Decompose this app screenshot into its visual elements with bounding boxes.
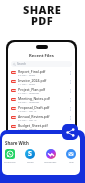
staticText: PDF [31,13,54,28]
staticText: Budget_Sheet.pdf [18,123,48,128]
staticText: Messenger [44,160,57,163]
button[interactable]: Search [11,61,72,67]
staticText: PDF [12,71,16,74]
staticText: 3.7 MB • Yesterday [18,92,40,95]
staticText: 2.0 MB • Mar 12 [18,110,37,113]
staticText: 0.8 MB • Yesterday [18,101,40,104]
button[interactable]: PDF [8,77,75,86]
staticText: Mail [69,160,74,163]
staticText: PDF [12,125,16,128]
staticText: Invoice_2024.pdf [18,78,47,83]
staticText: Skype [27,160,34,163]
button[interactable]: PDF [8,122,75,131]
staticText: Project_Plan.pdf [18,87,46,92]
staticText: Proposal_Draft.pdf [18,105,50,110]
staticText: PDF [12,116,16,119]
staticText: Annual_Review.pdf [18,114,50,119]
staticText: PDF [12,98,16,101]
staticText: S [28,149,32,159]
staticText: PDF [12,80,16,83]
button[interactable]: PDF [8,86,75,95]
staticText: WhatsApp [4,160,16,163]
staticText: 1.1 MB • Today [18,83,36,86]
button[interactable]: PDF [8,104,75,113]
button[interactable]: WhatsApp [4,149,16,163]
staticText: SHARE [23,2,62,17]
staticText: Search [17,62,27,66]
staticText: 1.6 MB • Mar 08 [18,128,37,131]
staticText: 5.2 MB • Mar 10 [18,119,37,122]
button[interactable]: S [25,149,35,163]
staticText: 2.4 MB • Today [18,74,36,77]
staticText: Share With [5,140,29,146]
button[interactable]: Share [62,124,78,140]
button[interactable]: PDF [8,113,75,122]
staticText: PDF [12,89,16,92]
button[interactable]: Mail [66,149,76,163]
button[interactable]: PDF [8,68,75,77]
staticText: Recent Files [8,53,75,59]
staticText: Meeting_Notes.pdf [18,96,50,101]
staticText: PDF [12,107,16,110]
button[interactable]: PDF [8,95,75,104]
button[interactable]: Messenger [44,149,57,163]
staticText: Report_Final.pdf [18,69,46,74]
